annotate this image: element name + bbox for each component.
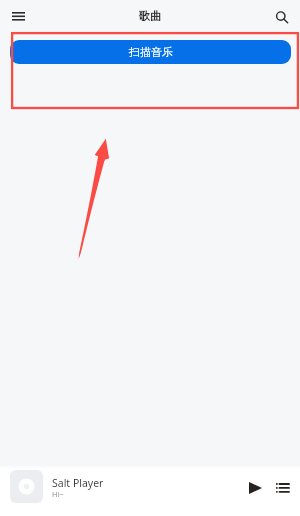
button[interactable]: Playlist xyxy=(269,474,295,500)
button[interactable]: Menu xyxy=(6,4,30,28)
button[interactable] xyxy=(0,469,236,512)
button[interactable]: 扫描音乐 xyxy=(10,40,291,64)
staticText: Salt Player xyxy=(52,476,104,490)
button[interactable]: Play xyxy=(242,475,268,501)
staticText: 扫描音乐 xyxy=(129,45,173,59)
staticText: Hi~ xyxy=(52,489,64,499)
staticText: 歌曲 xyxy=(0,9,300,23)
button[interactable]: Search xyxy=(267,3,291,27)
